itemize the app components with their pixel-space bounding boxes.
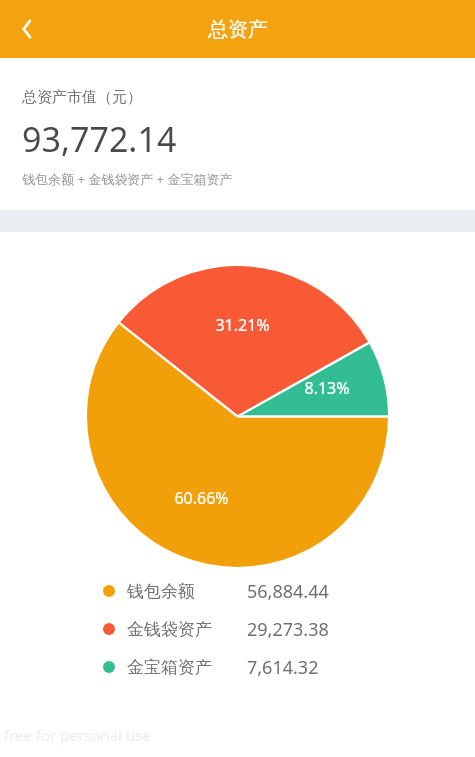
staticText: 7,614.32 (247, 655, 319, 680)
button[interactable]: 钱包余额 (103, 572, 459, 610)
staticText: 60.66% (174, 487, 229, 509)
button[interactable]: 金钱袋资产 (103, 610, 459, 648)
staticText: 金钱袋资产 (127, 619, 212, 640)
staticText: 金宝箱资产 (127, 657, 212, 678)
staticText: 钱包余额 + 金钱袋资产 + 金宝箱资产 (22, 170, 233, 188)
staticText: 56,884.44 (247, 579, 329, 604)
staticText: 93,772.14 (22, 116, 177, 162)
staticText: 8.13% (304, 377, 350, 399)
staticText: 29,273.38 (247, 617, 329, 642)
staticText: free for personal use (4, 725, 151, 745)
button[interactable]: Back (0, 1, 56, 57)
staticText: 总资产市值（元） (22, 88, 142, 107)
staticText: 总资产 (208, 17, 268, 42)
staticText: 31.21% (215, 314, 270, 336)
staticText: 钱包余额 (127, 581, 195, 602)
button[interactable]: 金宝箱资产 (103, 648, 459, 686)
